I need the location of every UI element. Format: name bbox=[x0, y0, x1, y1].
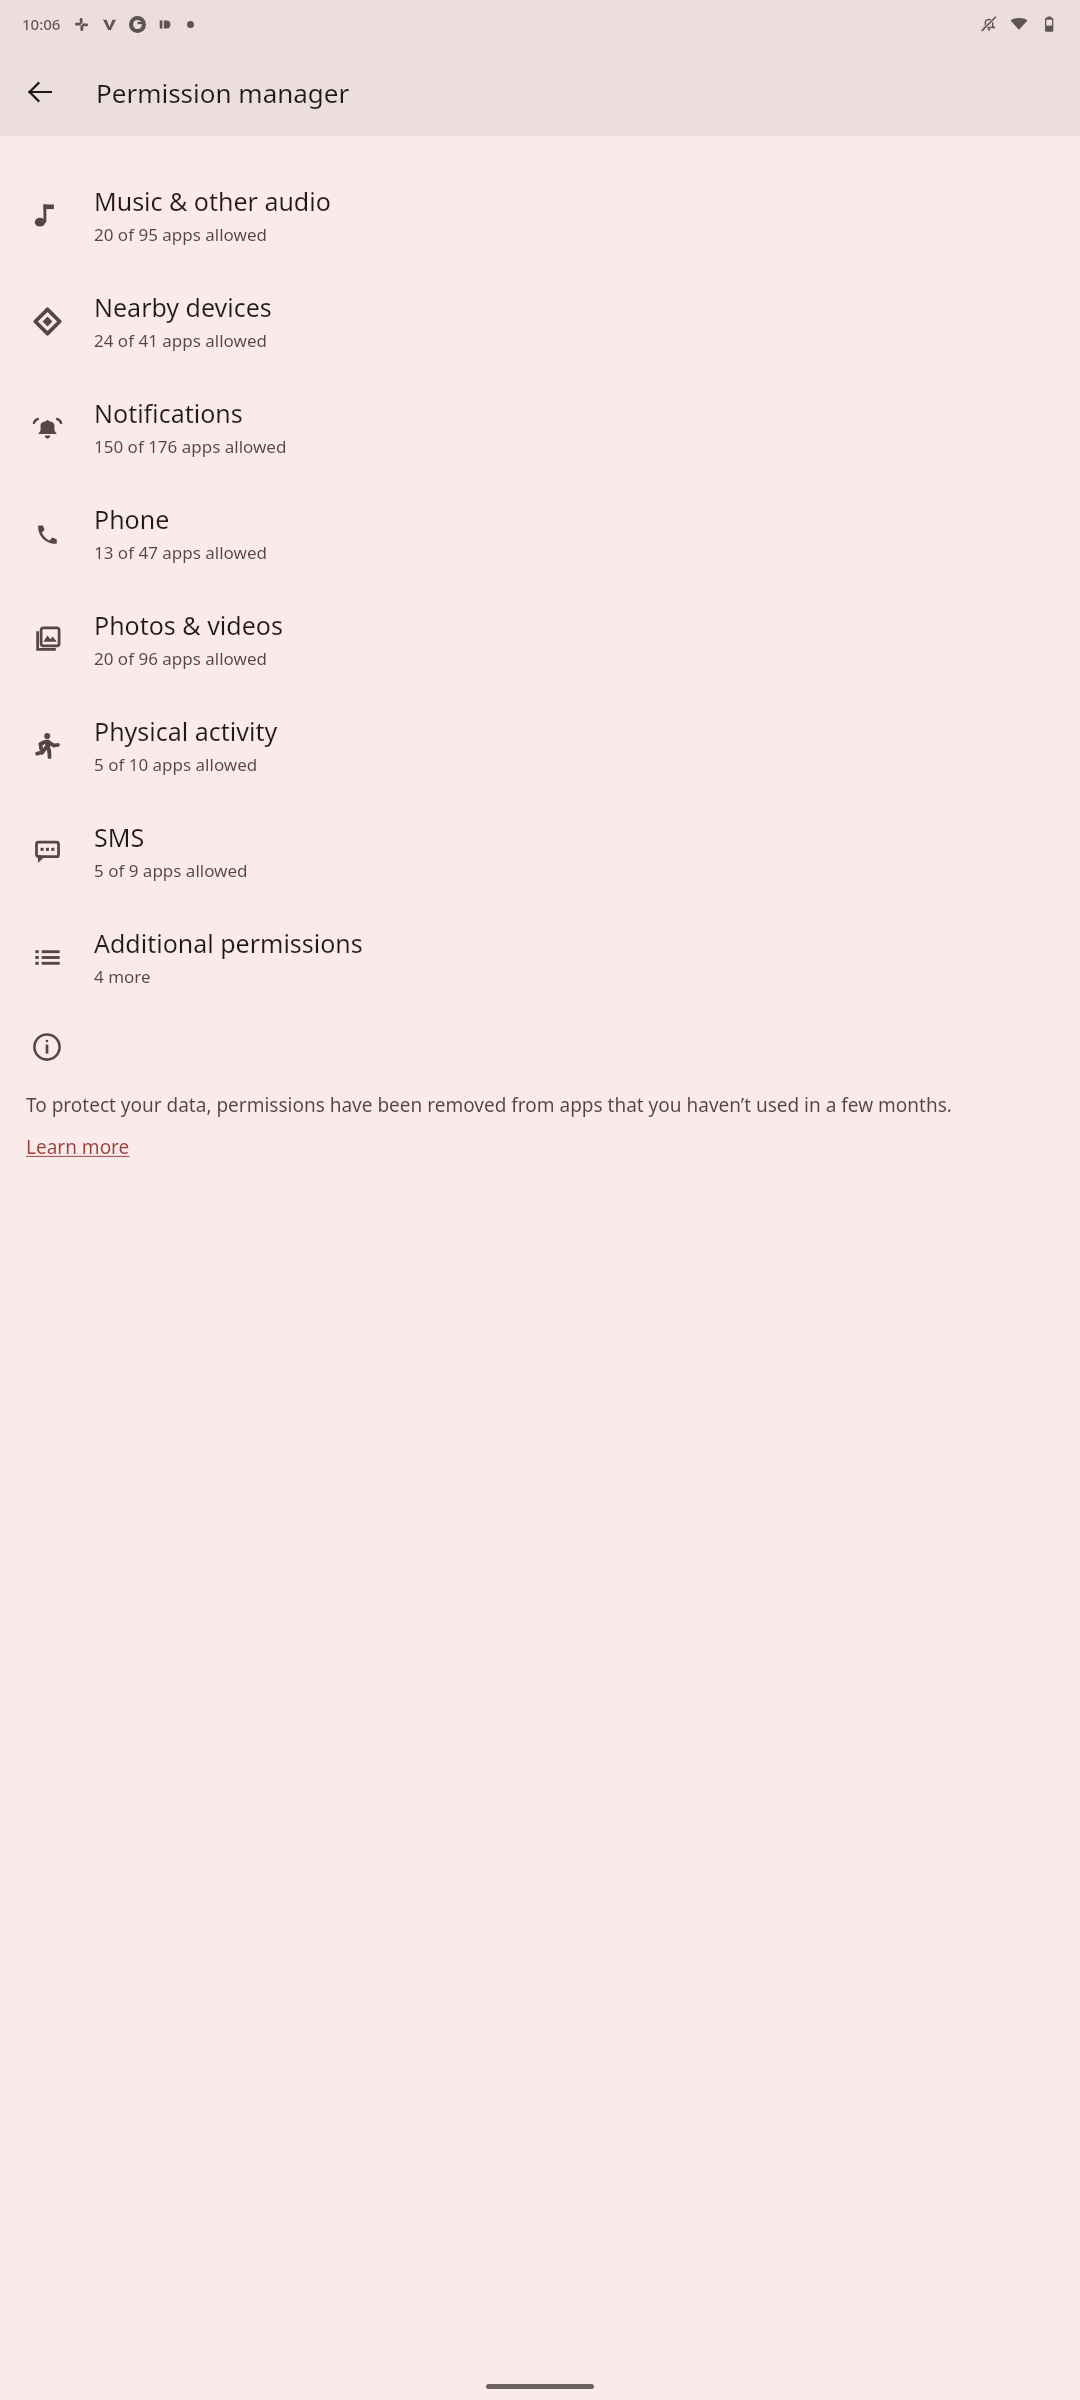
staticText: Nearby devices bbox=[94, 290, 272, 324]
button[interactable]: Learn more bbox=[26, 1134, 130, 1160]
staticText: Learn more bbox=[26, 1134, 130, 1160]
button[interactable]: Phone bbox=[0, 480, 1080, 586]
staticText: 13 of 47 apps allowed bbox=[94, 541, 267, 564]
staticText: 20 of 96 apps allowed bbox=[94, 647, 267, 670]
button[interactable]: Music & other audio bbox=[0, 162, 1080, 268]
button[interactable]: Physical activity bbox=[0, 692, 1080, 798]
staticText: SMS bbox=[94, 820, 145, 854]
staticText: Notifications bbox=[94, 396, 243, 430]
staticText: 4 more bbox=[94, 965, 151, 988]
button[interactable]: Back bbox=[16, 68, 64, 116]
staticText: 20 of 95 apps allowed bbox=[94, 223, 267, 246]
staticText: Phone bbox=[94, 502, 170, 536]
staticText: 5 of 9 apps allowed bbox=[94, 859, 248, 882]
button[interactable]: Nearby devices bbox=[0, 268, 1080, 374]
staticText: 150 of 176 apps allowed bbox=[94, 435, 287, 458]
staticText: Photos & videos bbox=[94, 608, 283, 642]
staticText: Permission manager bbox=[96, 75, 350, 110]
staticText: Additional permissions bbox=[94, 926, 363, 960]
button[interactable]: Photos & videos bbox=[0, 586, 1080, 692]
staticText: Physical activity bbox=[94, 714, 278, 748]
button[interactable]: SMS bbox=[0, 798, 1080, 904]
staticText: 24 of 41 apps allowed bbox=[94, 329, 267, 352]
staticText: 5 of 10 apps allowed bbox=[94, 753, 258, 776]
staticText: 10:06 bbox=[22, 14, 61, 34]
button[interactable]: Notifications bbox=[0, 374, 1080, 480]
staticText: To protect your data, permissions have b… bbox=[26, 1092, 952, 1118]
button[interactable]: Additional permissions bbox=[0, 904, 1080, 1010]
staticText: Music & other audio bbox=[94, 184, 331, 218]
